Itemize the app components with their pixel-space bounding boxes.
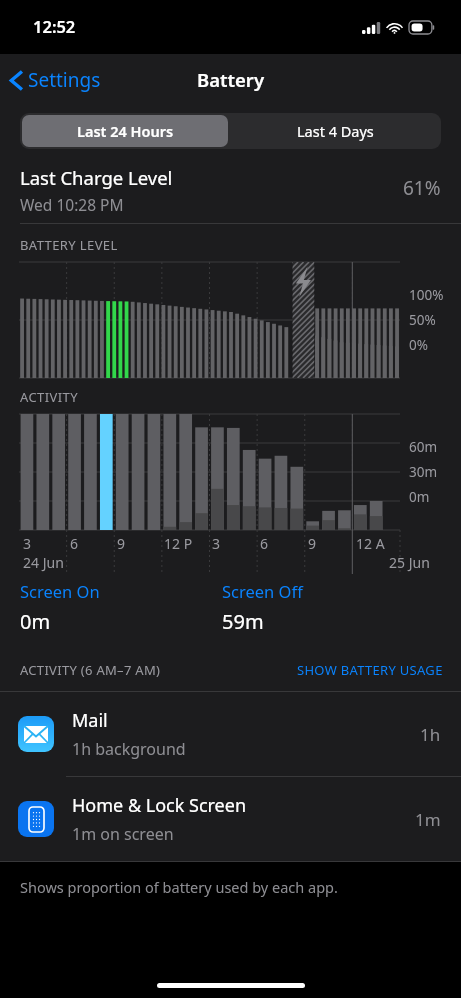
button[interactable]: Home & Lock Screen	[0, 777, 461, 861]
button[interactable]: Last 24 Hours	[22, 115, 228, 147]
staticText: 0m	[409, 488, 430, 506]
staticText: Last Charge Level	[20, 165, 173, 190]
staticText: 1m on screen	[72, 823, 174, 845]
staticText: Battery	[197, 67, 265, 92]
staticText: Mail	[72, 708, 108, 733]
staticText: 50%	[409, 311, 436, 329]
staticText: Screen Off	[222, 580, 303, 602]
staticText: Last 24 Hours	[77, 121, 174, 141]
staticText: 12 P	[164, 534, 193, 553]
staticText: 1m	[415, 808, 441, 831]
staticText: Home & Lock Screen	[72, 793, 247, 818]
staticText: 1h	[420, 723, 441, 746]
staticText: ACTIVITY (6 AM–7 AM)	[20, 661, 161, 679]
staticText: 61%	[403, 175, 441, 201]
staticText: Screen On	[20, 580, 100, 602]
staticText: 9	[117, 534, 126, 553]
button[interactable]: Mail	[0, 692, 461, 776]
staticText: 100%	[409, 286, 444, 304]
staticText: 1h background	[72, 738, 186, 760]
staticText: 3	[23, 534, 32, 553]
staticText: 24 Jun	[23, 553, 64, 572]
staticText: 30m	[409, 463, 438, 481]
button[interactable]: SHOW BATTERY USAGE	[293, 657, 447, 683]
staticText: 6	[260, 534, 269, 553]
staticText: 0m	[20, 608, 51, 635]
staticText: 59m	[222, 608, 264, 635]
staticText: 25 Jun	[389, 553, 430, 572]
staticText: 0%	[409, 336, 428, 354]
button[interactable]: Last 4 Days	[230, 113, 441, 149]
staticText: ACTIVITY	[20, 388, 78, 406]
staticText: 12 A	[356, 534, 385, 553]
staticText: 3	[212, 534, 221, 553]
staticText: Shows proportion of battery used by each…	[20, 877, 338, 897]
staticText: 12:52	[33, 15, 76, 37]
staticText: Wed 10:28 PM	[20, 194, 124, 215]
staticText: Last 4 Days	[297, 121, 374, 141]
button[interactable]: Settings	[0, 61, 111, 99]
staticText: 9	[308, 534, 317, 553]
staticText: 60m	[409, 438, 438, 456]
staticText: Settings	[28, 67, 101, 93]
staticText: 6	[70, 534, 79, 553]
staticText: BATTERY LEVEL	[20, 236, 118, 254]
